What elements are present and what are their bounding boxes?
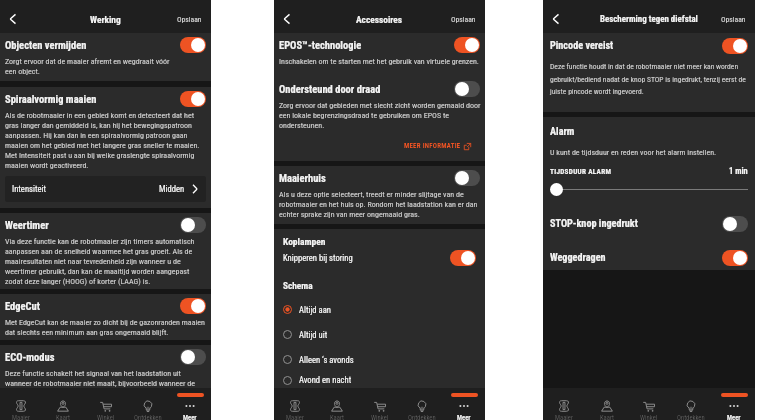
staticText: U kunt de tijdsduur en reden voor het al… [550, 148, 717, 157]
button[interactable]: ECO-modus [0, 345, 211, 368]
button[interactable]: Weertimer [0, 213, 211, 236]
staticText: Inschakelen om te starten met het gebrui… [279, 57, 480, 66]
button[interactable]: Kaart [316, 388, 358, 420]
button[interactable]: Opslaan [177, 15, 202, 24]
staticText: Deze functie houdt in dat de robotmaaier… [550, 62, 748, 96]
button[interactable]: Uitschakelen [180, 298, 206, 314]
button[interactable]: Kaart [42, 388, 84, 420]
button[interactable]: Opslaan [721, 15, 746, 24]
staticText: Koplampen [283, 236, 326, 247]
button[interactable]: Maaier [0, 388, 42, 420]
staticText: Accessoires [356, 14, 403, 25]
staticText: Kaart [600, 414, 615, 420]
button[interactable]: STOP-knop ingedrukt [543, 212, 755, 236]
staticText: Weertimer [5, 219, 180, 231]
staticText: ECO-modus [5, 351, 180, 363]
staticText: Via deze functie kan de robotmaaier zijn… [5, 237, 206, 286]
staticText: Maaierhuis [279, 172, 454, 184]
button[interactable]: Uitschakelen [722, 38, 748, 54]
button[interactable]: Knipperen bij storing [274, 247, 485, 269]
button[interactable]: Uitschakelen [180, 37, 206, 53]
staticText: STOP-knop ingedrukt [550, 218, 722, 230]
button[interactable]: Winkel [628, 388, 670, 420]
staticText: TIJDSDUUR ALARM [550, 167, 729, 175]
staticText: Avond en nacht [299, 375, 352, 385]
staticText: EPOS™-technologie [279, 39, 454, 51]
button[interactable]: Intensiteit [5, 176, 206, 202]
staticText: Zorg ervoor dat gebieden met slecht zich… [279, 101, 483, 130]
button[interactable]: Terug [5, 11, 21, 27]
button[interactable]: Alleen ‘s avonds [274, 347, 485, 372]
button[interactable]: Terug [548, 11, 564, 27]
staticText: Winkel [640, 414, 658, 420]
button[interactable]: Winkel [85, 388, 127, 420]
button[interactable]: MEER INFORMATIE [401, 140, 474, 152]
staticText: Alleen ‘s avonds [299, 355, 354, 365]
staticText: Ontdekken [408, 414, 436, 420]
button[interactable]: Tijdsduur alarm schuifregelaar [550, 183, 748, 196]
button[interactable]: Ontdekken [127, 388, 169, 420]
button[interactable]: Kaart [586, 388, 628, 420]
staticText: Spiraalvormig maaien [5, 93, 180, 105]
staticText: Meer [727, 414, 741, 420]
staticText: Altijd aan [299, 305, 331, 315]
staticText: Maaier [286, 414, 304, 420]
staticText: Alarm [550, 126, 575, 138]
staticText: Ondersteund door draad [279, 83, 454, 95]
staticText: Kaart [330, 414, 345, 420]
staticText: Zorgt ervoor dat de maaier afremt en weg… [5, 57, 181, 76]
staticText: Maaier [555, 414, 573, 420]
staticText: Midden [159, 184, 185, 194]
staticText: 1 min [729, 166, 748, 176]
button[interactable]: Ontdekken [670, 388, 712, 420]
staticText: Intensiteit [12, 184, 159, 194]
staticText: Ontdekken [134, 414, 162, 420]
button[interactable]: Uitschakelen [722, 250, 748, 266]
button[interactable]: Meer [169, 388, 211, 420]
staticText: Als de robotmaaier in een gebied komt en… [5, 111, 206, 170]
staticText: Bescherming tegen diefstal [600, 14, 698, 24]
button[interactable]: Winkel [359, 388, 401, 420]
staticText: Als u deze optie selecteert, treedt er m… [279, 190, 480, 219]
staticText: Met EdgeCut kan de maaier zo dicht bij d… [5, 318, 206, 337]
button[interactable]: Weggedragen [543, 246, 755, 270]
button[interactable]: Uitschakelen [450, 250, 476, 266]
staticText: Winkel [97, 414, 115, 420]
button[interactable]: Maaier [543, 388, 585, 420]
staticText: Pincode vereist [550, 40, 722, 52]
button[interactable]: Inschakelen [180, 349, 206, 365]
button[interactable]: Maaierhuis [274, 166, 485, 189]
staticText: Altijd uit [299, 330, 328, 340]
staticText: Knipperen bij storing [283, 253, 450, 263]
button[interactable]: Uitschakelen [180, 91, 206, 107]
button[interactable]: Altijd aan [274, 297, 485, 322]
button[interactable]: Meer [443, 388, 485, 420]
button[interactable]: Objecten vermijden [0, 33, 211, 56]
staticText: Werking [90, 14, 121, 25]
button[interactable]: Uitschakelen [454, 37, 480, 53]
button[interactable]: Pincode vereist [543, 33, 755, 58]
staticText: Ontdekken [677, 414, 705, 420]
button[interactable]: EPOS™-technologie [274, 33, 485, 56]
button[interactable]: Inschakelen [454, 81, 480, 97]
button[interactable]: EdgeCut [0, 294, 211, 317]
staticText: Maaier [12, 414, 30, 420]
button[interactable]: Spiraalvormig maaien [0, 87, 211, 110]
staticText: Objecten vermijden [5, 39, 180, 51]
button[interactable]: Inschakelen [722, 216, 748, 232]
button[interactable]: Inschakelen [180, 217, 206, 233]
staticText: Meer [183, 414, 197, 420]
button[interactable]: Terug [279, 11, 295, 27]
staticText: Meer [457, 414, 471, 420]
button[interactable]: Opslaan [451, 15, 476, 24]
button[interactable]: Altijd uit [274, 322, 485, 347]
button[interactable]: Maaier [274, 388, 316, 420]
staticText: Schema [283, 280, 313, 291]
staticText: MEER INFORMATIE [404, 142, 461, 150]
button[interactable]: Ondersteund door draad [274, 77, 485, 100]
staticText: Winkel [371, 414, 389, 420]
button[interactable]: Inschakelen [454, 170, 480, 186]
button[interactable]: Meer [713, 388, 755, 420]
button[interactable]: Ontdekken [401, 388, 443, 420]
button[interactable]: Avond en nacht [274, 372, 485, 388]
